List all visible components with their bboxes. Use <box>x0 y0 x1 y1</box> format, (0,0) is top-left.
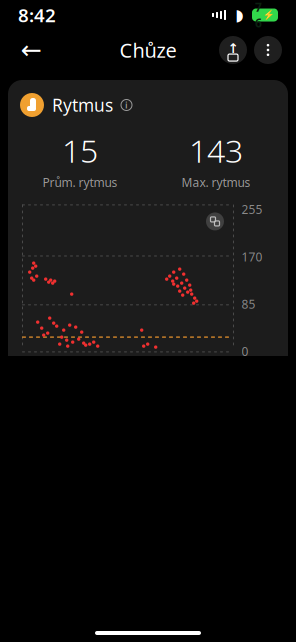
staticText: 15 <box>62 129 98 171</box>
button[interactable]: Back <box>14 33 48 67</box>
button[interactable]: Expand chart <box>206 212 224 230</box>
staticText: 143 <box>189 129 243 171</box>
staticText: Rytmus <box>52 93 113 116</box>
staticText: ← <box>20 36 41 64</box>
staticText: i <box>125 99 128 111</box>
staticText: 8:42 <box>18 3 56 27</box>
staticText: 0 <box>241 343 248 359</box>
staticText: 76 <box>255 0 262 31</box>
staticText: ◗ <box>235 6 243 24</box>
staticText: ↑ <box>227 41 238 56</box>
staticText: 170 <box>241 249 262 265</box>
staticText: ⚡ <box>263 10 275 20</box>
button[interactable]: More options <box>254 36 282 64</box>
button[interactable]: Share <box>219 36 247 64</box>
staticText: Prům. rytmus <box>42 174 117 190</box>
staticText: 85 <box>241 296 255 312</box>
staticText: Max. rytmus <box>181 174 250 190</box>
staticText: 255 <box>241 201 262 217</box>
staticText: Chůze <box>119 37 176 63</box>
